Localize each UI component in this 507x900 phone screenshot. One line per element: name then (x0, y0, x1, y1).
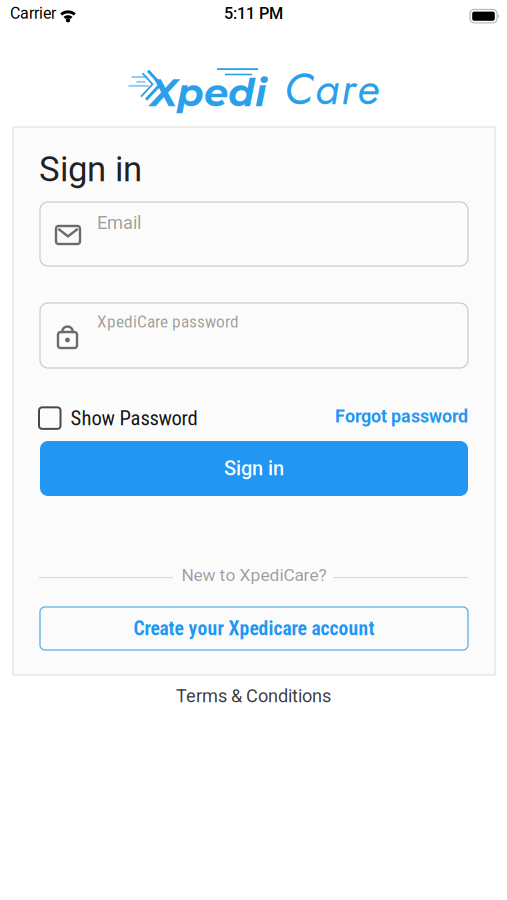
staticText: Email (97, 212, 141, 233)
staticText: Care (284, 57, 379, 121)
staticText: Carrier (10, 4, 56, 23)
button[interactable]: Show Password (39, 406, 197, 430)
button[interactable]: Create your Xpedicare account (40, 607, 468, 650)
staticText: Xpedi (150, 69, 267, 116)
staticText: Show Password (70, 406, 197, 430)
staticText: Terms & Conditions (176, 685, 331, 707)
staticText: 5:11 PM (224, 4, 283, 23)
staticText: Sign in (39, 149, 142, 190)
staticText: Create your Xpedicare account (133, 617, 374, 640)
staticText: Forgot password (335, 406, 468, 427)
button[interactable]: Forgot password (335, 406, 468, 427)
button[interactable]: Email (40, 202, 468, 266)
staticText: Sign in (224, 457, 284, 480)
button[interactable]: Terms & Conditions (176, 685, 331, 707)
staticText: New to XpediCare? (181, 565, 326, 585)
staticText: XpediCare password (97, 311, 239, 332)
button[interactable]: Sign in (40, 441, 468, 496)
button[interactable]: XpediCare password (40, 303, 468, 368)
